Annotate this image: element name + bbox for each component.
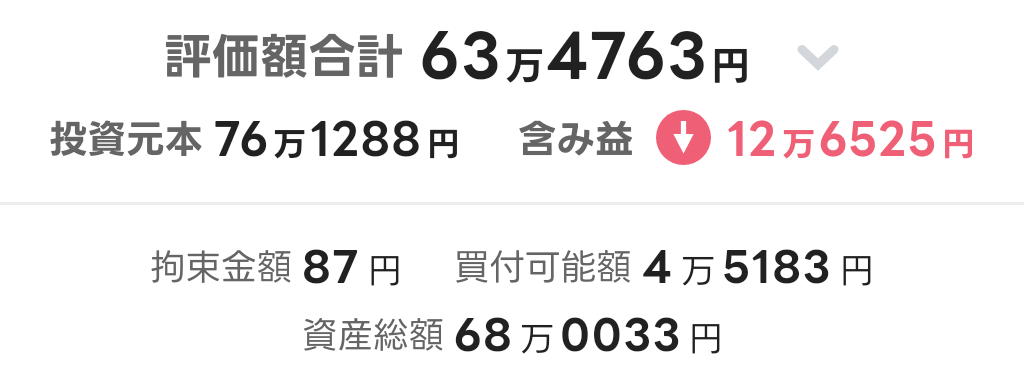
staticText: 円 (689, 319, 723, 356)
staticText: 63 (420, 22, 504, 87)
staticText: 円 (711, 44, 751, 87)
staticText: 5183 (722, 242, 833, 288)
staticText: 万 (681, 251, 715, 288)
staticText: 4763 (546, 22, 710, 87)
button[interactable]: 評価額合計 (0, 0, 1024, 109)
staticText: 6525 (819, 114, 938, 161)
staticText: 万 (273, 125, 306, 161)
staticText: 87 (302, 242, 361, 288)
other: 評価損益は下落 (656, 110, 711, 165)
staticText: 76 (214, 114, 269, 161)
staticText: 拘束金額 (150, 247, 293, 286)
staticText: 資産総額 (302, 315, 445, 354)
staticText: 0033 (560, 310, 683, 356)
staticText: 円 (427, 125, 460, 161)
staticText: 円 (368, 251, 402, 288)
staticText: 万 (520, 319, 554, 356)
staticText: 投資元本 (49, 117, 204, 159)
staticText: 含み益 (518, 117, 634, 159)
staticText: 買付可能額 (454, 247, 632, 286)
staticText: 1288 (310, 114, 423, 161)
staticText: 万 (505, 44, 545, 87)
staticText: 円 (942, 125, 975, 161)
button[interactable]: 内訳を表示 (792, 29, 844, 81)
staticText: 万 (782, 125, 815, 161)
staticText: 評価額合計 (164, 29, 405, 82)
staticText: 4 (642, 242, 674, 288)
staticText: 12 (727, 114, 778, 161)
staticText: 68 (454, 310, 514, 356)
staticText: 円 (840, 251, 874, 288)
